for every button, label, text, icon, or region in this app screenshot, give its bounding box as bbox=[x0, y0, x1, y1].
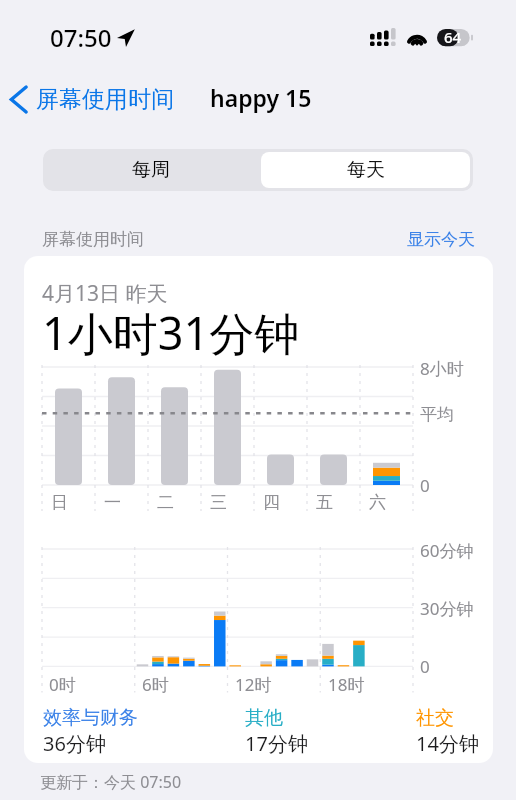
button[interactable]: 每周 bbox=[43, 149, 258, 191]
staticText: 五 bbox=[316, 492, 333, 513]
button[interactable]: 屏幕使用时间 bbox=[10, 85, 174, 114]
staticText: 六 bbox=[369, 492, 386, 513]
staticText: 三 bbox=[210, 492, 227, 513]
staticText: 其他 bbox=[245, 706, 283, 730]
staticText: 社交 bbox=[416, 706, 454, 730]
staticText: 每周 bbox=[132, 158, 170, 182]
staticText: 18时 bbox=[328, 673, 365, 696]
staticText: 8小时 bbox=[420, 357, 464, 380]
button[interactable]: 显示今天 bbox=[407, 229, 475, 250]
button[interactable]: 每天 bbox=[261, 152, 470, 188]
staticText: 17分钟 bbox=[245, 730, 308, 757]
staticText: 平均 bbox=[420, 404, 454, 425]
staticText: 更新于：今天 07:50 bbox=[40, 771, 182, 793]
button[interactable]: 社交 bbox=[416, 706, 479, 757]
staticText: 36分钟 bbox=[43, 730, 106, 757]
staticText: 14分钟 bbox=[416, 730, 479, 757]
staticText: 一 bbox=[104, 492, 121, 513]
staticText: 30分钟 bbox=[420, 597, 474, 620]
button[interactable]: 其他 bbox=[245, 706, 308, 757]
staticText: 屏幕使用时间 bbox=[36, 85, 174, 114]
staticText: 4月13日 昨天 bbox=[42, 279, 168, 308]
staticText: happy 15 bbox=[210, 82, 312, 113]
staticText: 日 bbox=[51, 492, 68, 513]
staticText: 07:50 bbox=[50, 21, 112, 54]
staticText: 64 bbox=[444, 27, 462, 45]
staticText: 屏幕使用时间 bbox=[42, 229, 144, 250]
staticText: 二 bbox=[157, 492, 174, 513]
button[interactable]: 效率与财务 bbox=[43, 706, 138, 757]
staticText: 6时 bbox=[142, 673, 169, 696]
staticText: 四 bbox=[263, 492, 280, 513]
staticText: 60分钟 bbox=[420, 539, 474, 562]
staticText: 0时 bbox=[49, 673, 76, 696]
staticText: 0 bbox=[420, 474, 430, 497]
staticText: 12时 bbox=[235, 673, 272, 696]
staticText: 0 bbox=[420, 655, 430, 678]
staticText: 1小时31分钟 bbox=[42, 302, 300, 363]
staticText: 效率与财务 bbox=[43, 706, 138, 730]
staticText: 每天 bbox=[347, 158, 385, 182]
